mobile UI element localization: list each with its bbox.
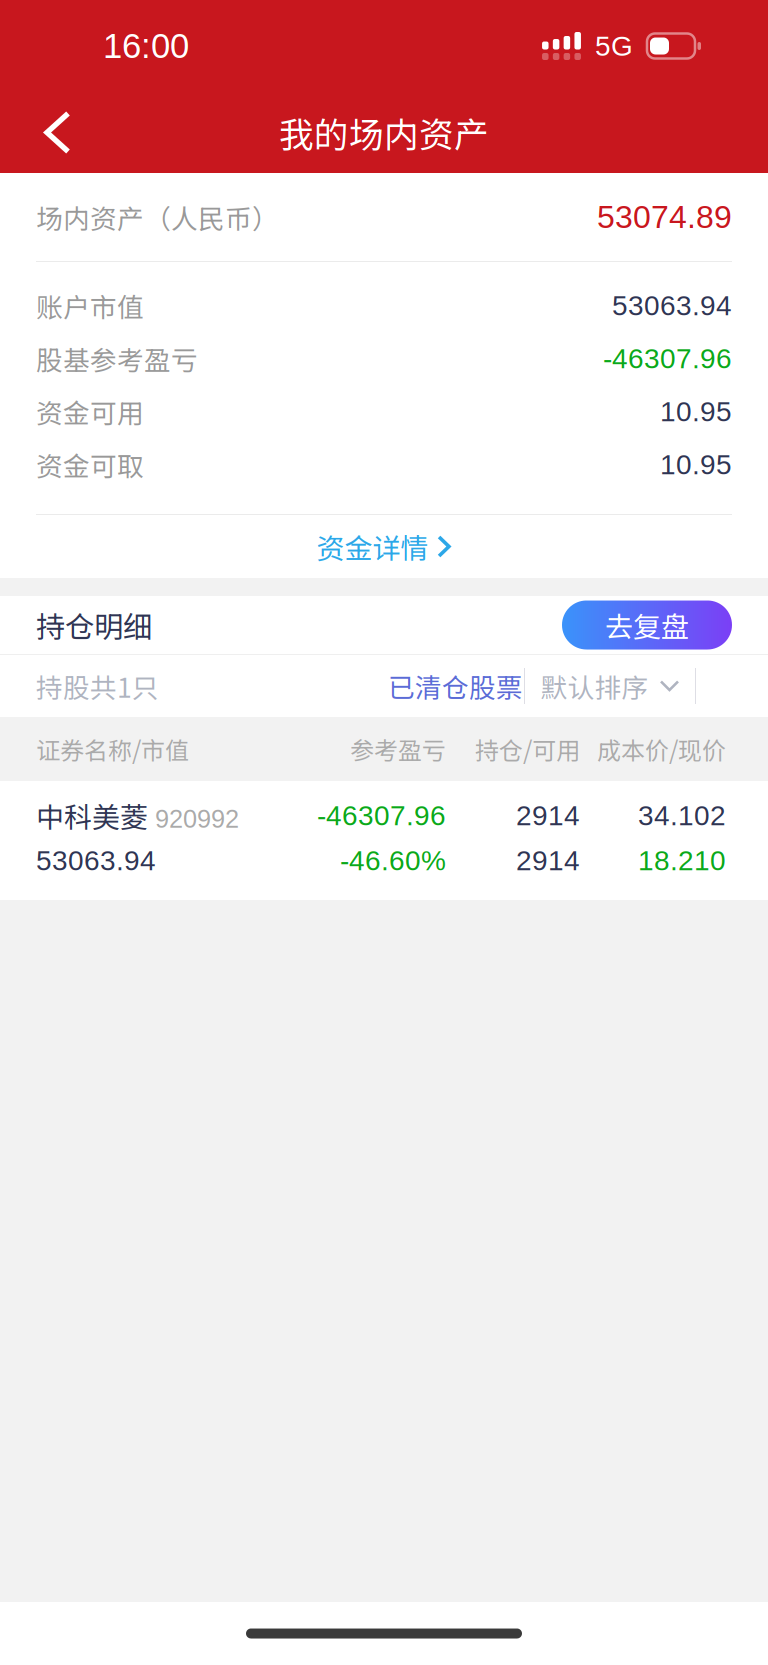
button[interactable]: 返回 [0,98,93,166]
staticText: 资金可取 [36,445,144,484]
staticText: 资金详情 [317,526,429,567]
staticText: 10.95 [660,396,732,427]
staticText: 持仓/可用 [475,732,580,766]
staticText: 我的场内资产 [279,107,489,158]
button[interactable]: 去复盘 [562,600,732,649]
staticText: 已清仓股票 [388,667,523,705]
staticText: 920992 [155,805,239,833]
button[interactable]: 中科美菱 [0,781,768,900]
staticText: -46307.96 [317,800,446,831]
staticText: 10.95 [660,449,732,480]
staticText: 53074.89 [597,199,732,235]
staticText: -46.60% [340,845,446,876]
staticText: 16:00 [103,27,189,65]
staticText: 资金可用 [36,392,144,431]
staticText: 18.210 [638,845,726,876]
staticText: 持股共1只 [36,667,159,705]
staticText: 参考盈亏 [350,732,446,766]
staticText: 2914 [516,845,580,876]
staticText: 53063.94 [36,845,156,876]
staticText: 股基参考盈亏 [36,339,198,378]
staticText: 34.102 [638,800,726,831]
staticText: -46307.96 [603,343,732,374]
staticText: 53063.94 [612,290,732,321]
staticText: 2914 [516,800,580,831]
button[interactable]: 资金详情 [0,515,768,578]
staticText: 场内资产（人民币） [36,198,279,236]
staticText: 默认排序 [540,667,648,705]
staticText: 中科美菱 [36,795,148,836]
staticText: 账户市值 [36,286,144,325]
staticText: 5G [595,30,633,62]
button[interactable]: 已清仓股票 [388,655,524,717]
staticText: 成本价/现价 [597,732,726,766]
staticText: 持仓明细 [36,604,152,646]
staticText: 去复盘 [605,605,689,645]
button[interactable]: 默认排序 [525,655,695,717]
staticText: 证券名称/市值 [36,732,189,766]
